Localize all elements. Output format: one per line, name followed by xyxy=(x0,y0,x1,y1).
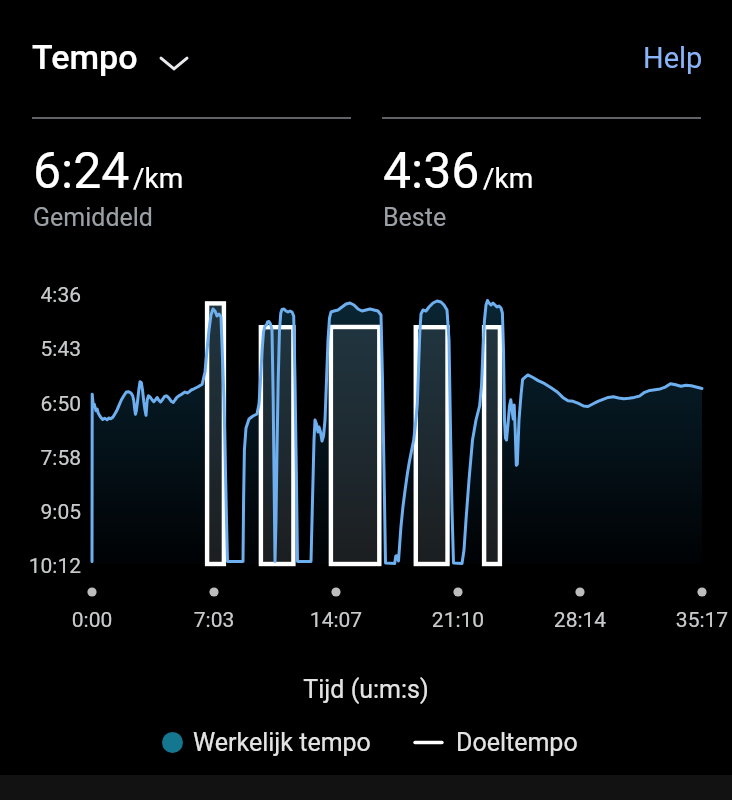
staticText: 10:12 xyxy=(0,554,81,579)
staticText: /km xyxy=(133,162,184,195)
button[interactable]: Help xyxy=(643,41,703,75)
staticText: Gemiddeld xyxy=(33,203,153,232)
staticText: 35:17 xyxy=(642,608,732,633)
staticText: 4:36 xyxy=(383,142,480,201)
staticText: 5:43 xyxy=(0,337,81,362)
staticText: Help xyxy=(643,41,703,75)
staticText: 7:03 xyxy=(154,608,274,633)
staticText: 7:58 xyxy=(0,446,81,471)
button[interactable]: Werkelijk tempo xyxy=(162,728,371,757)
button[interactable]: Tempo xyxy=(32,37,188,77)
staticText: Doeltempo xyxy=(456,728,578,757)
staticText: 0:00 xyxy=(32,608,152,633)
staticText: 14:07 xyxy=(276,608,396,633)
staticText: Tempo xyxy=(32,37,138,77)
staticText: Beste xyxy=(383,203,447,232)
staticText: 4:36 xyxy=(0,283,81,308)
staticText: /km xyxy=(483,162,534,195)
staticText: 9:05 xyxy=(0,500,81,525)
staticText: 28:14 xyxy=(520,608,640,633)
staticText: 6:50 xyxy=(0,392,81,417)
staticText: Tijd (u:m:s) xyxy=(0,675,732,704)
staticText: 21:10 xyxy=(398,608,518,633)
button[interactable]: Doeltempo xyxy=(415,728,578,757)
staticText: 6:24 xyxy=(33,142,130,201)
staticText: Werkelijk tempo xyxy=(193,728,371,757)
